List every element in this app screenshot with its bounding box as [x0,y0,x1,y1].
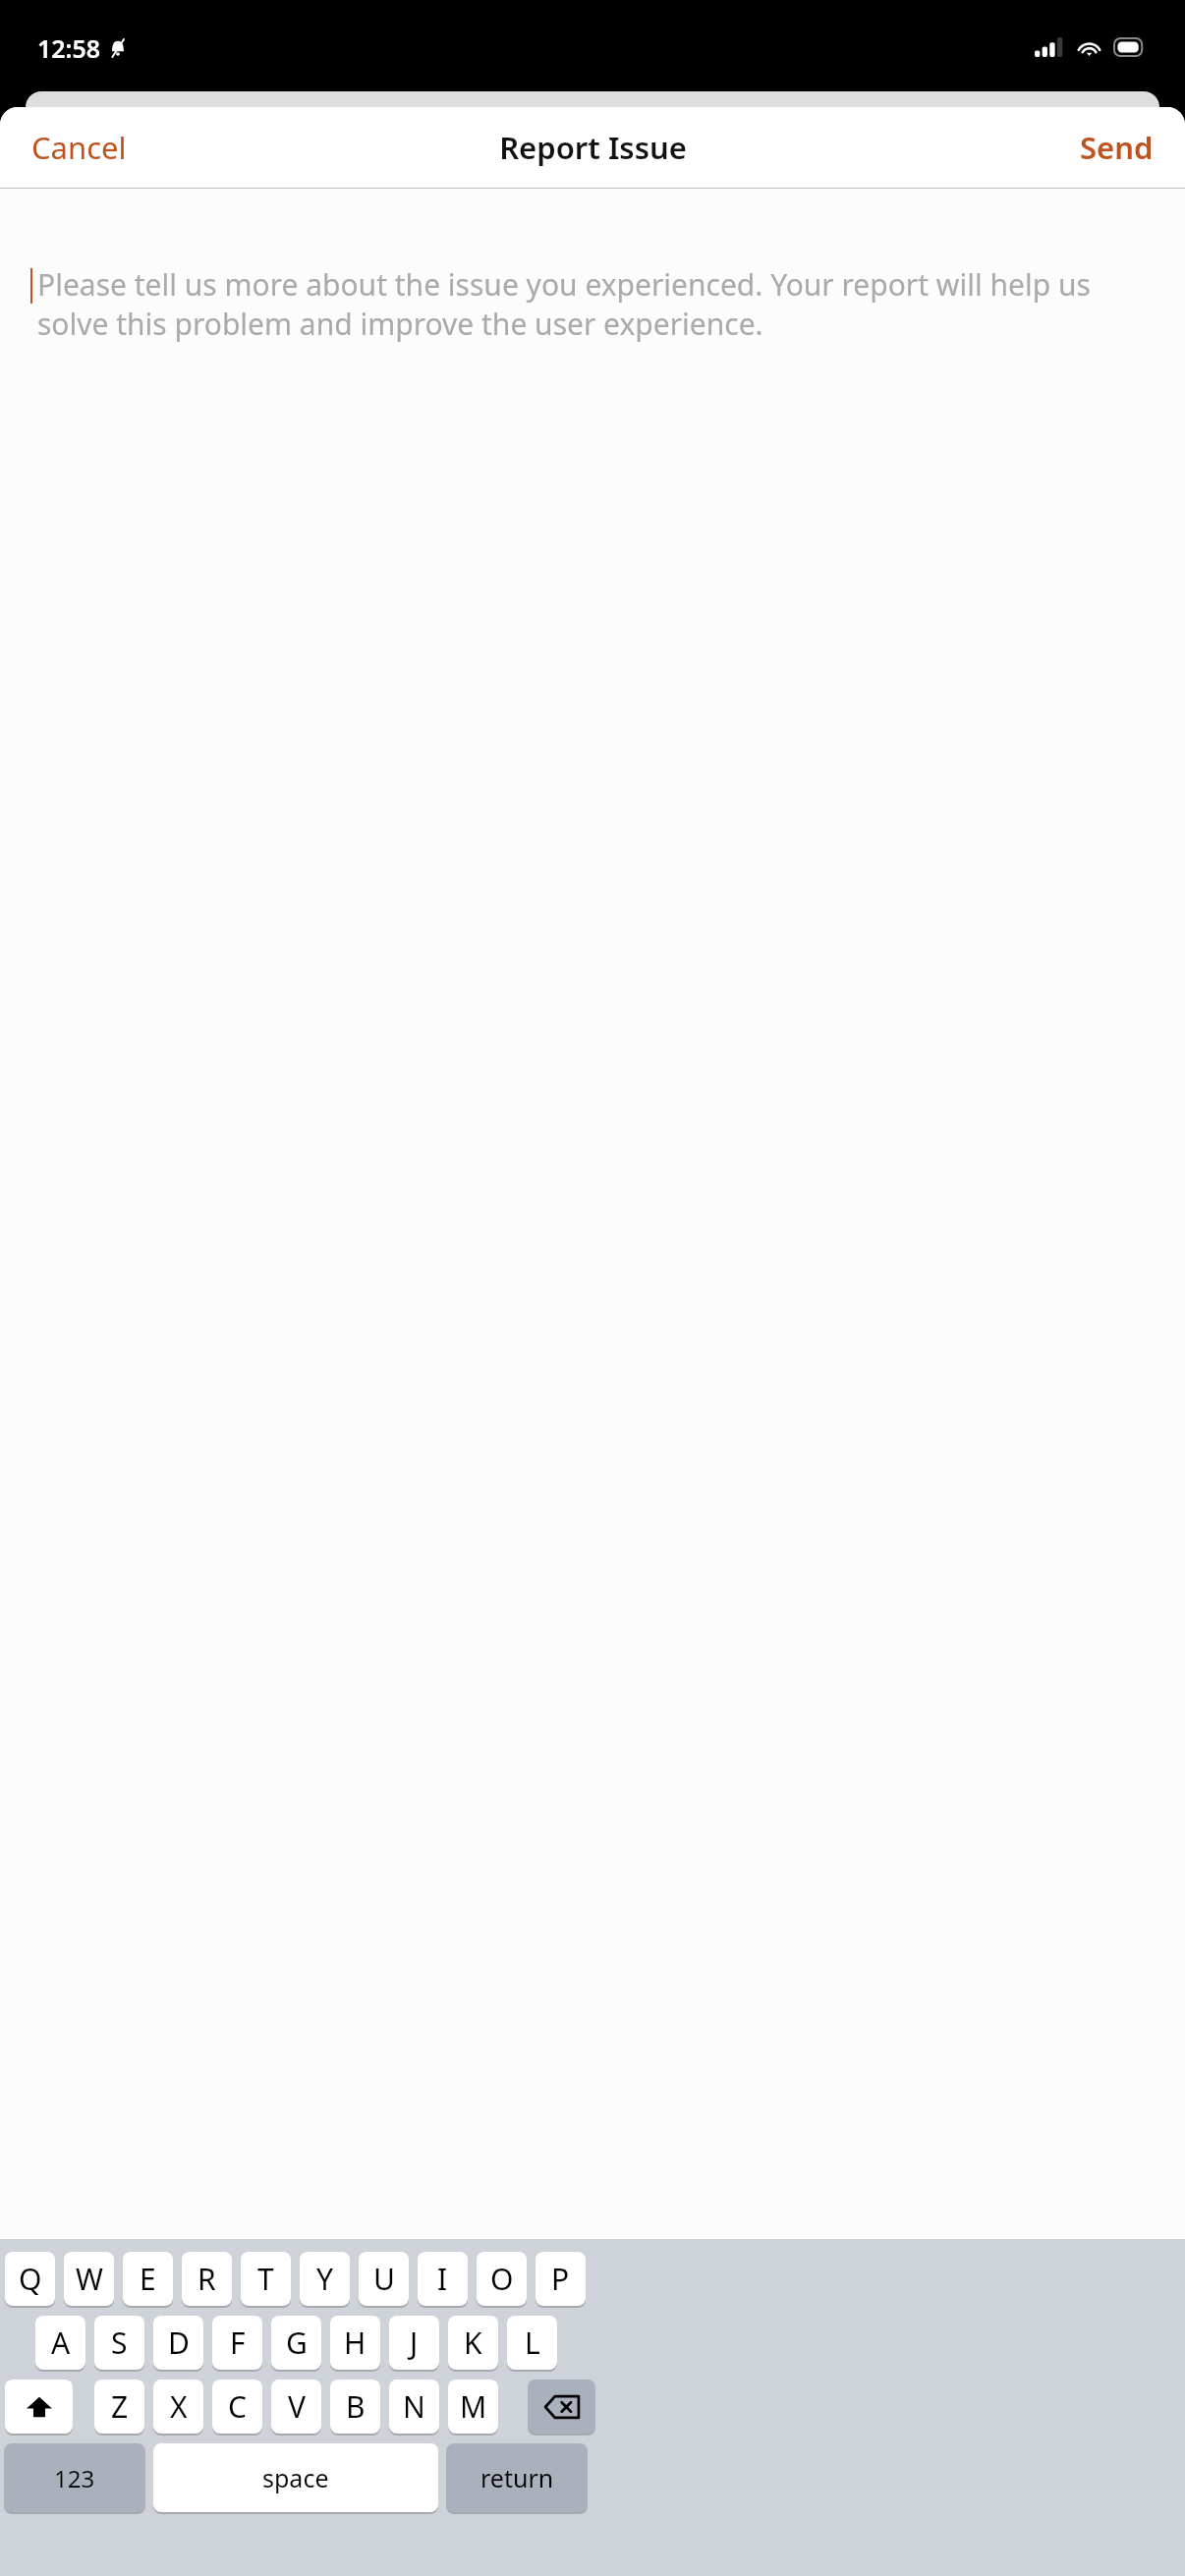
button[interactable]: Q [5,2252,55,2306]
button[interactable]: V [271,2380,321,2434]
button[interactable]: Backspace [528,2380,595,2434]
staticText: 12:58 [37,31,101,65]
staticText: V [288,2386,306,2427]
staticText: I [437,2259,448,2299]
staticText: P [551,2259,570,2299]
staticText: return [480,2461,554,2494]
button[interactable]: A [35,2316,85,2370]
button[interactable]: Z [94,2380,144,2434]
staticText: R [197,2259,216,2299]
staticText: 123 [54,2462,95,2494]
staticText: H [344,2323,367,2363]
staticText: Send [1080,127,1154,168]
staticText: N [403,2386,425,2427]
staticText: Z [111,2386,129,2427]
button[interactable]: E [123,2252,173,2306]
button[interactable]: Cancel [0,117,144,178]
button[interactable]: U [359,2252,409,2306]
button[interactable]: X [153,2380,203,2434]
button[interactable]: K [448,2316,498,2370]
button[interactable]: J [389,2316,439,2370]
staticText: E [140,2259,156,2299]
button[interactable]: L [507,2316,557,2370]
staticText: Please tell us more about the issue you … [37,264,1157,344]
staticText: G [286,2323,308,2363]
button[interactable]: F [212,2316,262,2370]
staticText: S [111,2323,128,2363]
button[interactable]: T [241,2252,291,2306]
staticText: J [410,2323,419,2363]
button[interactable]: space [153,2443,438,2512]
staticText: D [168,2323,190,2363]
button[interactable]: I [418,2252,468,2306]
staticText: M [460,2386,487,2427]
button[interactable]: S [94,2316,144,2370]
button[interactable]: N [389,2380,439,2434]
staticText: A [51,2323,71,2363]
staticText: Report Issue [499,127,687,168]
staticText: U [373,2259,395,2299]
button[interactable]: D [153,2316,203,2370]
button[interactable]: Shift [5,2380,73,2434]
staticText: K [464,2323,482,2363]
button[interactable]: G [271,2316,321,2370]
staticText: B [346,2386,366,2427]
button[interactable]: P [536,2252,586,2306]
staticText: Cancel [31,127,127,168]
staticText: O [490,2259,514,2299]
button[interactable]: O [477,2252,527,2306]
staticText: T [257,2259,274,2299]
button[interactable]: Y [300,2252,350,2306]
button[interactable]: H [330,2316,380,2370]
button[interactable]: C [212,2380,262,2434]
button[interactable]: R [182,2252,232,2306]
staticText: Q [19,2259,42,2299]
staticText: C [228,2386,247,2427]
button[interactable]: M [448,2380,498,2434]
staticText: F [230,2323,246,2363]
button[interactable]: Send [1062,117,1185,178]
staticText: L [525,2323,540,2363]
button[interactable]: return [446,2443,588,2512]
staticText: space [262,2461,329,2494]
staticText: X [170,2386,188,2427]
button[interactable]: W [64,2252,114,2306]
staticText: W [76,2259,103,2299]
button[interactable]: 123 [4,2443,145,2512]
button[interactable]: B [330,2380,380,2434]
staticText: Y [316,2259,333,2299]
